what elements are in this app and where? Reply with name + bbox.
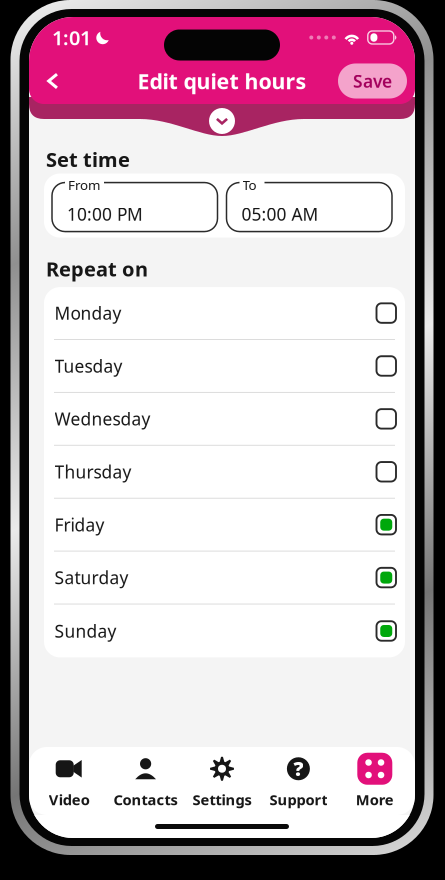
staticText: 05:00 AM xyxy=(241,203,318,226)
button[interactable]: Contacts xyxy=(107,748,184,814)
button[interactable]: Video xyxy=(31,748,107,814)
staticText: Sunday xyxy=(54,619,116,642)
button[interactable]: Sunday xyxy=(44,604,405,657)
staticText: To xyxy=(242,176,256,194)
button[interactable]: Tuesday xyxy=(44,340,405,393)
staticText: 1:01 xyxy=(52,24,91,51)
button[interactable]: ? xyxy=(260,748,337,814)
staticText: Wednesday xyxy=(54,407,150,430)
staticText: Tuesday xyxy=(54,354,122,377)
staticText: Contacts xyxy=(114,790,178,809)
button[interactable]: Friday xyxy=(44,499,405,552)
staticText: More xyxy=(356,790,394,809)
staticText: From xyxy=(68,176,100,194)
staticText: Settings xyxy=(192,790,251,809)
staticText: Saturday xyxy=(54,566,128,589)
button[interactable]: Thursday xyxy=(44,446,405,499)
staticText: Support xyxy=(269,790,327,809)
button[interactable]: Saturday xyxy=(44,552,405,604)
staticText: Save xyxy=(353,69,392,92)
staticText: Friday xyxy=(54,513,104,536)
staticText: Monday xyxy=(54,302,121,325)
staticText: Edit quiet hours xyxy=(137,67,306,95)
staticText: ? xyxy=(293,755,303,782)
button[interactable]: More xyxy=(337,748,413,814)
button[interactable]: Monday xyxy=(44,287,405,340)
button[interactable]: Settings xyxy=(184,748,260,814)
button[interactable]: Wednesday xyxy=(44,393,405,446)
button[interactable]: Save xyxy=(338,63,407,98)
staticText: Video xyxy=(49,790,90,809)
staticText: Repeat on xyxy=(46,256,148,282)
button[interactable]: Back xyxy=(33,60,73,102)
staticText: Set time xyxy=(46,146,130,173)
staticText: 10:00 PM xyxy=(67,203,143,226)
staticText: Thursday xyxy=(54,460,131,483)
